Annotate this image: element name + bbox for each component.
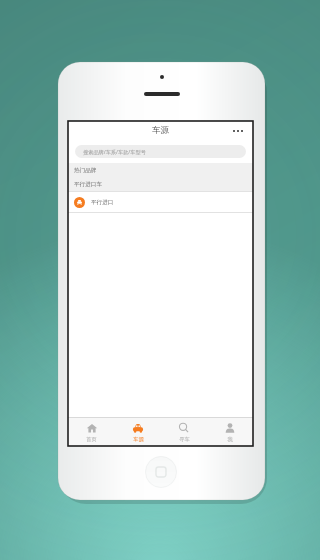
button[interactable]: 首页	[68, 418, 115, 446]
button[interactable]: 我	[207, 418, 253, 446]
staticText: 寻车	[179, 436, 190, 443]
button[interactable]: 车源	[115, 418, 161, 446]
button[interactable]: 平行进口	[68, 192, 253, 212]
button[interactable]: More options	[231, 126, 245, 136]
staticText: 热门品牌	[74, 167, 97, 174]
staticText: 平行进口车	[74, 181, 102, 188]
button[interactable]: 寻车	[161, 418, 207, 446]
staticText: 车源	[152, 125, 169, 136]
button[interactable]: Home button	[145, 456, 177, 488]
staticText: 搜索品牌/车系/车款/车型号	[83, 148, 146, 155]
staticText: 首页	[86, 436, 97, 443]
button[interactable]: 搜索品牌/车系/车款/车型号	[75, 145, 246, 158]
staticText: 我	[227, 436, 233, 443]
staticText: 平行进口	[91, 199, 114, 206]
staticText: 车源	[133, 436, 144, 443]
